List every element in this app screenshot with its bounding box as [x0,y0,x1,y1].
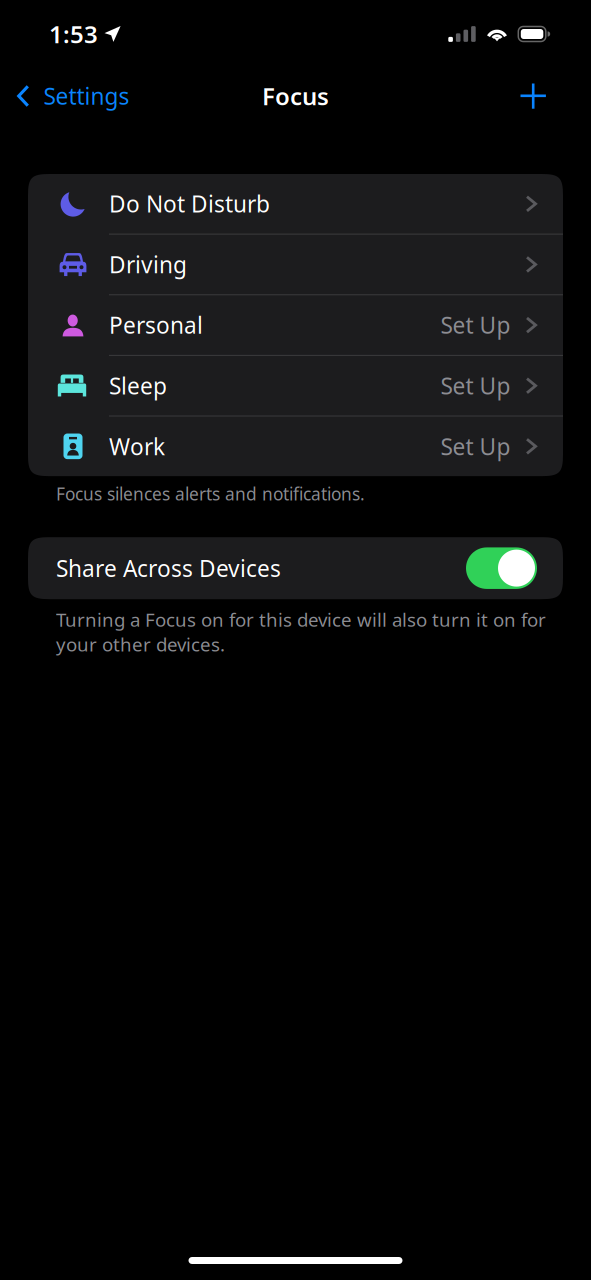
button[interactable]: Share Across Devices [28,537,563,599]
staticText: Set Up [441,431,511,461]
staticText: Focus silences alerts and notifications. [56,482,365,505]
staticText: Set Up [441,310,511,340]
staticText: Share Across Devices [56,553,281,583]
button[interactable]: Sleep [28,356,563,416]
staticText: Turning a Focus on for this device will … [56,607,546,657]
staticText: Focus [262,80,329,112]
button[interactable]: Settings [0,70,129,122]
staticText: 1:53 [49,18,98,50]
staticText: Settings [43,81,129,111]
button[interactable]: Work [28,416,563,476]
staticText: Sleep [109,371,167,401]
button[interactable]: Do Not Disturb [28,174,563,235]
staticText: Set Up [441,371,511,401]
staticText: Personal [109,310,203,340]
staticText: Do Not Disturb [109,189,270,219]
staticText: Driving [109,249,187,279]
button[interactable]: Driving [28,235,563,295]
staticText: Work [109,431,165,461]
button[interactable]: Add Focus [501,72,591,119]
button[interactable]: Personal [28,295,563,356]
